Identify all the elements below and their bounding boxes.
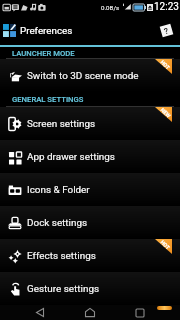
staticText: Gesture settings bbox=[27, 283, 100, 295]
button[interactable]: Effects settings bbox=[0, 239, 180, 272]
staticText: GENERAL SETTINGS bbox=[12, 95, 180, 104]
staticText: Icons & Folder bbox=[27, 184, 90, 196]
staticText: Switch to 3D scene mode bbox=[27, 70, 139, 82]
button[interactable]: Home bbox=[80, 305, 100, 320]
button[interactable]: Recents bbox=[130, 305, 150, 320]
staticText: ? bbox=[163, 25, 170, 36]
staticText: HOT bbox=[159, 239, 171, 251]
staticText: App drawer settings bbox=[27, 151, 115, 163]
staticText: 0.0B/s bbox=[101, 4, 120, 11]
staticText: NEW bbox=[160, 107, 172, 119]
button[interactable]: Icons & Folder bbox=[0, 173, 180, 206]
button[interactable]: Dock settings bbox=[0, 206, 180, 239]
button[interactable]: Back bbox=[30, 305, 50, 320]
staticText: Preferences bbox=[20, 25, 73, 36]
staticText: HOT bbox=[159, 59, 171, 71]
staticText: Screen settings bbox=[27, 118, 96, 130]
button[interactable]: App drawer settings bbox=[0, 140, 180, 173]
staticText: Effects settings bbox=[27, 250, 96, 262]
button[interactable]: Screen settings bbox=[0, 107, 180, 140]
staticText: 12:23 bbox=[154, 1, 179, 13]
button[interactable]: Help bbox=[158, 22, 175, 39]
staticText: LAUNCHER MODE bbox=[12, 49, 180, 58]
staticText: Dock settings bbox=[27, 217, 88, 229]
button[interactable]: Gesture settings bbox=[0, 272, 180, 305]
button[interactable]: Switch to 3D scene mode bbox=[0, 59, 180, 92]
